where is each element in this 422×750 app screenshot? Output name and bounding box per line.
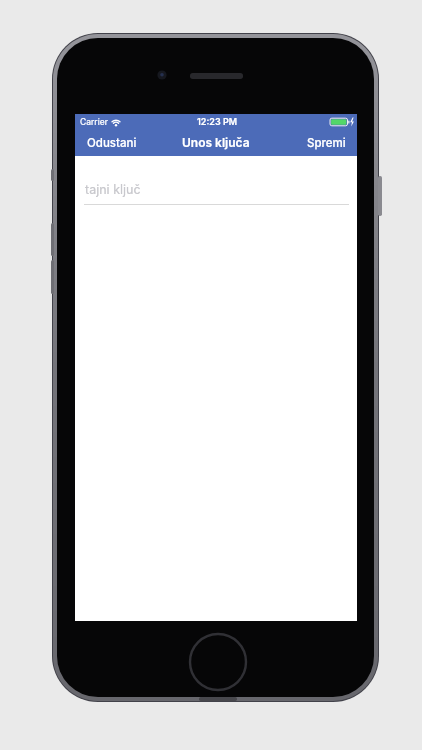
button[interactable]: Odustani	[75, 136, 125, 150]
staticText: Unos ključa	[182, 135, 250, 150]
staticText: Carrier	[80, 117, 108, 127]
button[interactable]: Spremi	[318, 136, 357, 150]
staticText: tajni ključ	[85, 182, 141, 197]
button[interactable]: tajni ključ	[75, 156, 357, 211]
staticText: Spremi	[307, 136, 346, 150]
staticText: Odustani	[87, 136, 137, 150]
staticText: 12:23 PM	[197, 116, 237, 127]
